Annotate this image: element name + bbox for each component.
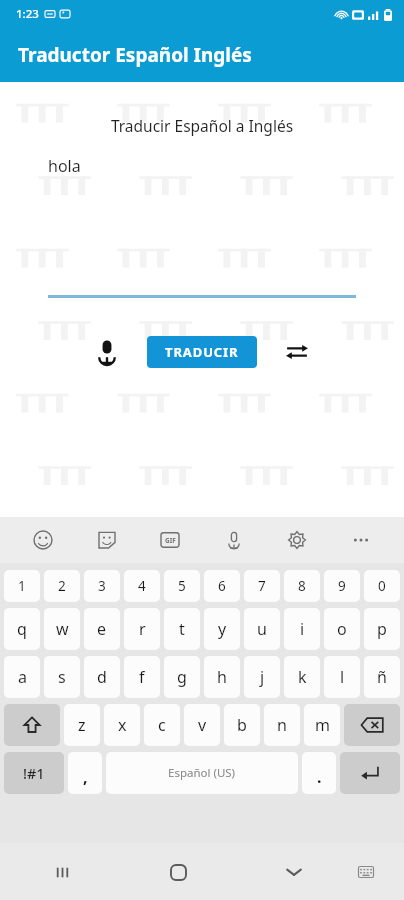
button[interactable]: 6	[204, 570, 240, 602]
staticText: x	[118, 714, 127, 736]
button[interactable]: b	[224, 704, 260, 746]
button[interactable]: t	[164, 608, 200, 650]
button[interactable]: 0	[364, 570, 400, 602]
staticText: n	[277, 714, 287, 736]
staticText: b	[237, 714, 247, 736]
staticText: 2	[58, 577, 66, 595]
staticText: v	[198, 714, 207, 736]
staticText: Español (US)	[168, 765, 236, 781]
button[interactable]: Entrada de voz	[85, 330, 129, 374]
button[interactable]: k	[284, 656, 320, 698]
staticText: 5	[178, 577, 186, 595]
button[interactable]: ,	[68, 752, 102, 794]
staticText: f	[139, 666, 145, 688]
button[interactable]: f	[124, 656, 160, 698]
staticText: hola	[48, 155, 81, 177]
staticText: m	[315, 714, 330, 736]
button[interactable]: Recientes	[40, 850, 84, 894]
staticText: 9	[338, 577, 346, 595]
button[interactable]: y	[204, 608, 240, 650]
button[interactable]: x	[104, 704, 140, 746]
button[interactable]: 7	[244, 570, 280, 602]
staticText: w	[56, 618, 69, 640]
button[interactable]: GIF	[150, 520, 190, 560]
button[interactable]: !#1	[4, 752, 64, 794]
staticText: e	[97, 618, 107, 640]
button[interactable]: j	[244, 656, 280, 698]
staticText: q	[17, 618, 27, 640]
button[interactable]: Mayúsculas	[4, 704, 60, 746]
button[interactable]: 2	[44, 570, 80, 602]
button[interactable]: Stickers	[87, 520, 127, 560]
staticText: a	[18, 666, 27, 688]
button[interactable]: Intro	[340, 752, 400, 794]
staticText: h	[217, 666, 227, 688]
staticText: Traducir Español a Inglés	[0, 115, 404, 136]
staticText: 3	[98, 577, 106, 595]
button[interactable]: q	[4, 608, 40, 650]
staticText: 0	[378, 577, 386, 595]
staticText: t	[179, 618, 185, 640]
button[interactable]: p	[364, 608, 400, 650]
staticText: i	[300, 618, 305, 640]
button[interactable]: r	[124, 608, 160, 650]
button[interactable]: Más opciones	[341, 520, 381, 560]
staticText: 8	[298, 577, 306, 595]
button[interactable]: Emoji	[23, 520, 63, 560]
staticText: 1	[18, 577, 26, 595]
button[interactable]: Dictado por voz	[214, 520, 254, 560]
staticText: ñ	[377, 666, 387, 688]
staticText: r	[139, 618, 146, 640]
staticText: TRADUCIR	[165, 343, 239, 361]
button[interactable]: i	[284, 608, 320, 650]
button[interactable]: Borrar	[344, 704, 400, 746]
button[interactable]: 3	[84, 570, 120, 602]
button[interactable]: 1	[4, 570, 40, 602]
staticText: 6	[218, 577, 226, 595]
staticText: ,	[83, 766, 88, 788]
button[interactable]: w	[44, 608, 80, 650]
button[interactable]: o	[324, 608, 360, 650]
button[interactable]: .	[302, 752, 336, 794]
staticText: k	[298, 666, 307, 688]
button[interactable]: c	[144, 704, 180, 746]
button[interactable]: m	[304, 704, 340, 746]
button[interactable]: Ocultar teclado	[272, 850, 316, 894]
button[interactable]: Cambiar teclado	[346, 852, 386, 892]
button[interactable]: n	[264, 704, 300, 746]
button[interactable]: e	[84, 608, 120, 650]
staticText: !#1	[23, 763, 45, 783]
button[interactable]: 5	[164, 570, 200, 602]
staticText: g	[177, 666, 187, 688]
staticText: 4	[138, 577, 146, 595]
staticText: y	[218, 618, 227, 640]
button[interactable]: l	[324, 656, 360, 698]
staticText: p	[377, 618, 387, 640]
button[interactable]: h	[204, 656, 240, 698]
staticText: 1:23	[16, 6, 39, 22]
staticText: o	[337, 618, 347, 640]
button[interactable]: z	[64, 704, 100, 746]
staticText: u	[257, 618, 267, 640]
staticText: s	[58, 666, 66, 688]
staticText: j	[260, 666, 265, 688]
button[interactable]: 4	[124, 570, 160, 602]
button[interactable]: v	[184, 704, 220, 746]
staticText: 7	[258, 577, 266, 595]
button[interactable]: s	[44, 656, 80, 698]
staticText: Traductor Español Inglés	[18, 42, 252, 68]
button[interactable]: Intercambiar idiomas	[275, 330, 319, 374]
staticText: GIF	[165, 536, 176, 545]
button[interactable]: Español (US)	[106, 752, 298, 794]
button[interactable]: u	[244, 608, 280, 650]
button[interactable]: g	[164, 656, 200, 698]
button[interactable]: 8	[284, 570, 320, 602]
staticText: c	[158, 714, 166, 736]
button[interactable]: ñ	[364, 656, 400, 698]
button[interactable]: TRADUCIR	[147, 336, 257, 368]
button[interactable]: a	[4, 656, 40, 698]
button[interactable]: Configuración	[277, 520, 317, 560]
button[interactable]: d	[84, 656, 120, 698]
button[interactable]: Inicio	[156, 850, 200, 894]
button[interactable]: 9	[324, 570, 360, 602]
